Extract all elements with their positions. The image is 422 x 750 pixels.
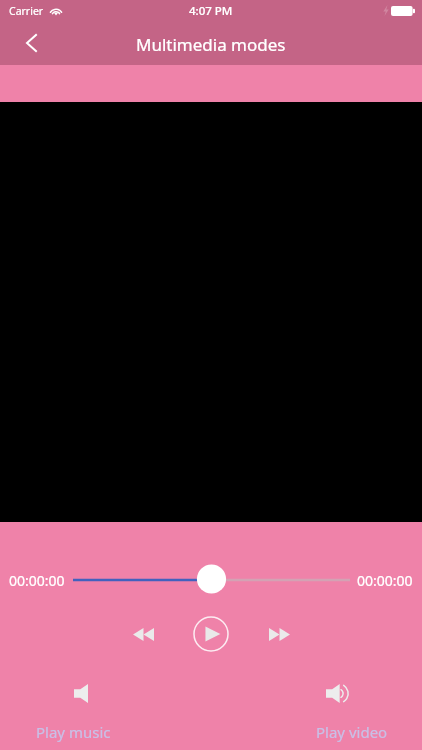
button[interactable]: Play [187, 610, 235, 658]
staticText: 4:07 PM [189, 3, 233, 19]
button[interactable]: Play music [26, 718, 121, 746]
button[interactable]: Rewind [119, 610, 167, 658]
staticText: 00:00:00 [357, 571, 413, 590]
button[interactable]: Play video [306, 718, 398, 746]
staticText: Multimedia modes [136, 33, 286, 56]
button[interactable]: Fast forward [255, 610, 303, 658]
button[interactable]: Back [9, 21, 53, 65]
staticText: 00:00:00 [9, 571, 65, 590]
button[interactable]: Seek bar [73, 566, 350, 594]
staticText: Play music [36, 722, 111, 742]
button[interactable]: Volume down [57, 669, 105, 717]
staticText: Play video [316, 722, 388, 742]
button[interactable]: Volume up [313, 669, 361, 717]
staticText: Carrier [9, 4, 44, 18]
